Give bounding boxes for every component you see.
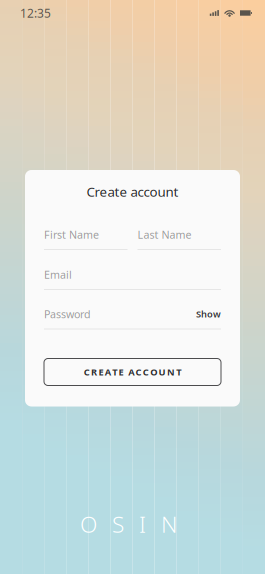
- staticText: Create account: [86, 183, 178, 200]
- staticText: 12:35: [20, 5, 51, 21]
- staticText: CREATE ACCOUNT: [84, 366, 181, 378]
- staticText: OSIN: [80, 509, 178, 539]
- staticText: Password: [44, 307, 91, 321]
- staticText: Show: [196, 308, 221, 320]
- staticText: First Name: [44, 227, 99, 242]
- button[interactable]: Show: [188, 308, 221, 320]
- staticText: Email: [44, 267, 72, 282]
- staticText: Last Name: [137, 227, 191, 242]
- button[interactable]: CREATE ACCOUNT: [44, 358, 221, 385]
